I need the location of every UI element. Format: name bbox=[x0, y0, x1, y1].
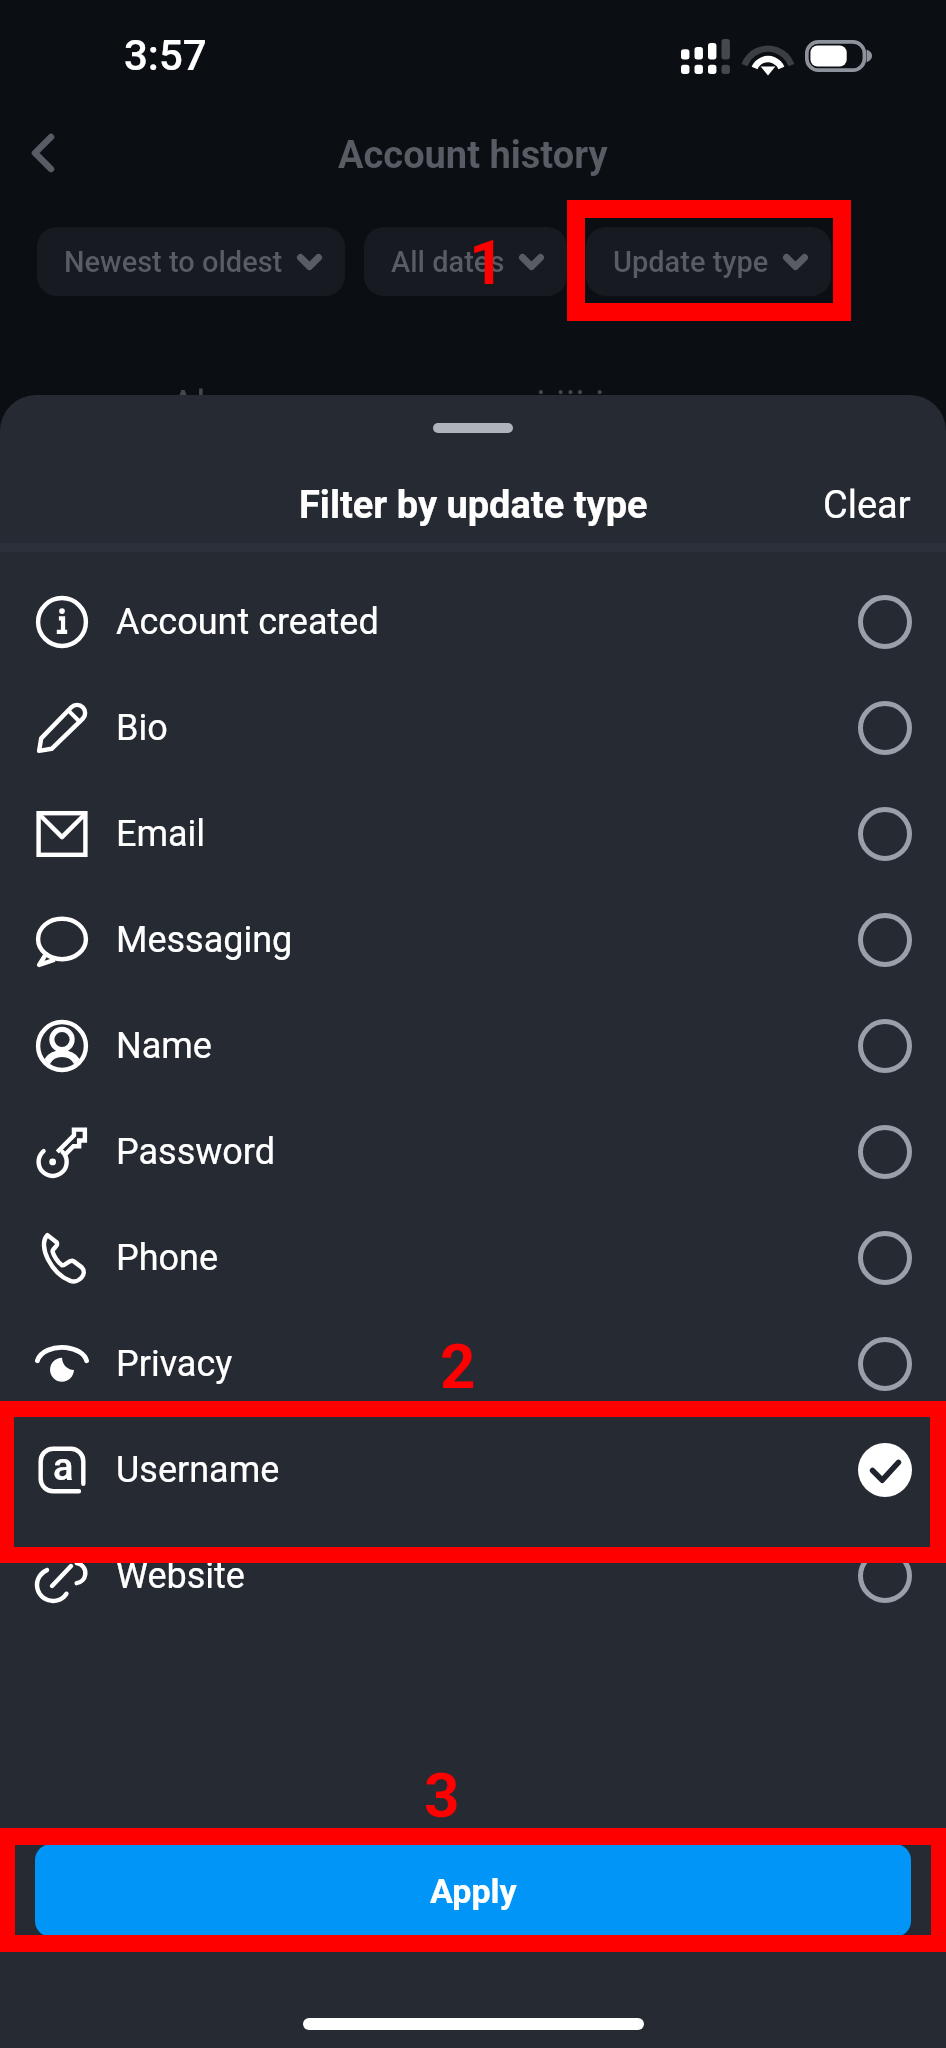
staticText: Apply bbox=[430, 1871, 517, 1911]
staticText: Privacy bbox=[116, 1343, 233, 1385]
button[interactable]: Clear bbox=[788, 475, 946, 536]
button[interactable]: Apply bbox=[35, 1844, 911, 1937]
staticText: Update type bbox=[613, 245, 769, 279]
staticText: Al bbox=[170, 382, 206, 429]
staticText: i iii i bbox=[536, 382, 605, 429]
button[interactable]: Phone bbox=[0, 1205, 946, 1311]
staticText: Name bbox=[116, 1025, 212, 1067]
staticText: 3:57 bbox=[124, 31, 207, 80]
staticText: Email bbox=[116, 813, 206, 855]
staticText: a bbox=[53, 1445, 74, 1490]
button[interactable]: Update type bbox=[586, 227, 831, 296]
staticText: Password bbox=[116, 1131, 276, 1173]
button[interactable]: Back bbox=[11, 121, 75, 185]
staticText: Messaging bbox=[116, 919, 293, 961]
staticText: 2 bbox=[440, 1330, 476, 1403]
button[interactable]: All dates bbox=[364, 227, 567, 296]
staticText: Bio bbox=[116, 707, 168, 749]
button[interactable]: Messaging bbox=[0, 887, 946, 993]
staticText: Clear bbox=[823, 483, 911, 528]
staticText: 3 bbox=[424, 1759, 460, 1832]
button[interactable]: Password bbox=[0, 1099, 946, 1205]
staticText: 1 bbox=[469, 226, 505, 299]
button[interactable]: Account created bbox=[0, 569, 946, 675]
staticText: Website bbox=[116, 1555, 245, 1597]
button[interactable]: Email bbox=[0, 781, 946, 887]
staticText: Filter by update type bbox=[299, 483, 648, 528]
staticText: Username bbox=[116, 1449, 280, 1491]
button[interactable]: Name bbox=[0, 993, 946, 1099]
button[interactable]: Privacy bbox=[0, 1311, 946, 1417]
staticText: All dates bbox=[391, 245, 505, 279]
button[interactable]: a bbox=[0, 1417, 946, 1523]
staticText: Newest to oldest bbox=[64, 245, 283, 279]
staticText: Account created bbox=[116, 601, 379, 643]
button[interactable]: Website bbox=[0, 1523, 946, 1629]
button[interactable]: Bio bbox=[0, 675, 946, 781]
button[interactable]: Newest to oldest bbox=[37, 227, 345, 296]
staticText: Account history bbox=[338, 133, 608, 178]
staticText: Phone bbox=[116, 1237, 219, 1279]
